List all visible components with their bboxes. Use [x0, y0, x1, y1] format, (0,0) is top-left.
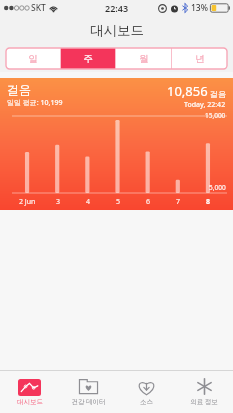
staticText: 22:43 [105, 2, 129, 14]
button[interactable]: 주 [61, 48, 115, 69]
button[interactable]: 월 [116, 48, 171, 69]
staticText: 2 Jun [19, 197, 36, 207]
staticText: 일일 평균: 10,199 [7, 98, 63, 108]
staticText: 년 [195, 53, 205, 65]
other: Health Data [78, 378, 99, 395]
staticText: 소스 [140, 398, 153, 406]
other: Sources [137, 379, 156, 396]
staticText: 의료 정보 [190, 397, 218, 406]
staticText: 대시보드 [90, 22, 144, 39]
other: Medical ID [196, 378, 213, 395]
button[interactable]: 일 [6, 48, 60, 69]
button[interactable]: 걸음 [0, 78, 233, 210]
staticText: 7 [176, 197, 181, 207]
staticText: 13% [191, 2, 208, 14]
staticText: 5 [116, 197, 121, 207]
other: Dashboard [18, 379, 41, 396]
staticText: Today, 22:42 [184, 100, 226, 110]
staticText: 대시보드 [17, 398, 43, 406]
staticText: SKT [31, 2, 46, 14]
button[interactable]: Medical ID [175, 371, 233, 413]
button[interactable]: 년 [172, 48, 227, 69]
staticText: 건강 데이터 [71, 397, 106, 406]
staticText: 월 [139, 53, 149, 65]
staticText: 일 [28, 53, 38, 65]
staticText: 3 [56, 197, 61, 207]
staticText: 걸음 [210, 89, 226, 99]
staticText: 주 [83, 53, 93, 65]
staticText: 걸음 [7, 82, 31, 97]
staticText: 10,856 [167, 82, 208, 100]
staticText: 5,000 [209, 183, 226, 192]
staticText: 6 [146, 197, 151, 207]
button[interactable]: Sources [117, 371, 175, 413]
staticText: 4 [86, 197, 91, 207]
staticText: 15,000 [205, 111, 226, 120]
button[interactable]: Health Data [59, 371, 117, 413]
staticText: 8 [206, 197, 211, 207]
button[interactable]: Dashboard [0, 371, 59, 413]
